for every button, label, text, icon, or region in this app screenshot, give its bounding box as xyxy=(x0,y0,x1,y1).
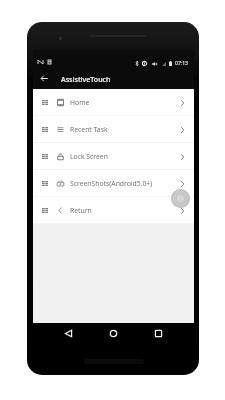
button[interactable]: Lock Screen xyxy=(33,143,194,170)
button[interactable]: Home xyxy=(33,89,194,116)
staticText: 07:13 xyxy=(175,60,189,67)
staticText: Lock Screen xyxy=(70,152,108,161)
staticText: Return xyxy=(70,206,92,215)
staticText: Recent Task xyxy=(70,125,108,134)
button[interactable]: Recent apps xyxy=(149,324,167,342)
button[interactable]: Back xyxy=(59,324,77,342)
button[interactable]: Recent Task xyxy=(33,116,194,143)
button[interactable]: Return xyxy=(33,197,194,224)
button[interactable]: Back xyxy=(37,71,51,85)
button[interactable]: Assistive touch button xyxy=(171,189,190,208)
staticText: ScreenShots(Android5.0+) xyxy=(70,179,153,188)
button[interactable]: Home xyxy=(104,324,122,342)
button[interactable]: ScreenShots(Android5.0+) xyxy=(33,170,194,197)
staticText: AssistiveTouch xyxy=(61,74,111,84)
staticText: Home xyxy=(70,98,90,107)
